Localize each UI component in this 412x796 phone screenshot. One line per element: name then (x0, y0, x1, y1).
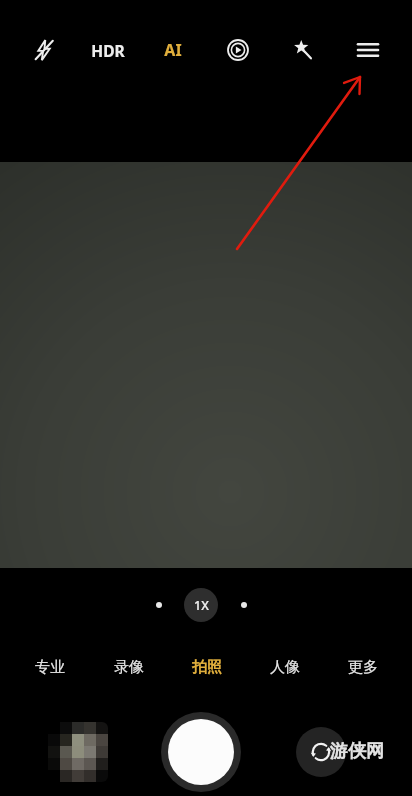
staticText: AI (164, 39, 182, 61)
button[interactable]: Zoom in (241, 602, 247, 608)
staticText: 专业 (35, 658, 65, 677)
button[interactable]: Filters (283, 30, 323, 70)
button[interactable]: Settings menu (346, 28, 390, 72)
button[interactable]: Gallery (48, 722, 108, 782)
staticText: HDR (91, 40, 125, 61)
button[interactable]: Motion photo (218, 30, 258, 70)
button[interactable]: Flash off (24, 30, 64, 70)
button[interactable]: HDR (76, 26, 140, 74)
button[interactable]: 拍照 (168, 648, 246, 686)
button[interactable]: 人像 (246, 648, 324, 686)
staticText: 1X (194, 597, 209, 614)
staticText: 人像 (270, 658, 300, 677)
staticText: 更多 (348, 658, 378, 677)
button[interactable]: 专业 (10, 648, 89, 686)
button[interactable]: 1X (184, 588, 218, 622)
button[interactable]: Switch camera (296, 727, 346, 777)
button[interactable]: 录像 (89, 648, 168, 686)
staticText: 录像 (114, 658, 144, 677)
staticText: 拍照 (192, 658, 222, 677)
button[interactable]: AI (140, 26, 205, 74)
button[interactable]: Shutter (161, 712, 241, 792)
button[interactable]: Zoom out (156, 602, 162, 608)
button[interactable]: 更多 (324, 648, 402, 686)
staticText: 游侠网 (330, 740, 384, 763)
